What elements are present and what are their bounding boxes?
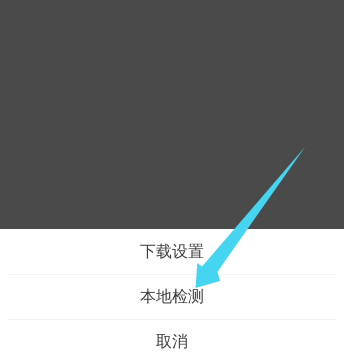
button[interactable]: 本地检测 (0, 274, 344, 319)
button[interactable]: 下载设置 (0, 229, 344, 274)
button[interactable]: 取消 (0, 319, 344, 364)
staticText: 本地检测 (140, 287, 204, 306)
staticText: 下载设置 (140, 242, 204, 261)
staticText: 取消 (156, 332, 188, 351)
